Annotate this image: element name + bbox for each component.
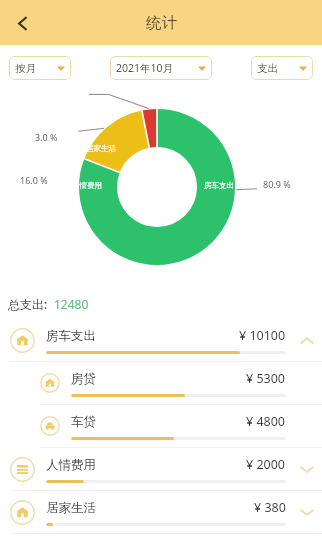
staticText: 按月 [15,62,36,75]
staticText: 统计 [146,13,177,33]
button[interactable]: 2021年10月 [110,56,212,80]
staticText: 12480 [54,296,89,312]
staticText: 16.0 % [20,174,48,186]
staticText: ¥ 4800 [246,413,286,430]
staticText: 房车支出 [204,181,234,190]
staticText: 居家生活 [86,144,116,153]
button[interactable]: 房车支出 [0,319,322,361]
staticText: ¥ 2000 [246,456,286,473]
button[interactable]: 按月 [9,56,71,80]
staticText: 80.9 % [263,178,291,190]
staticText: 支出 [257,62,278,75]
staticText: 车贷 [71,414,96,430]
button[interactable]: Collapse [292,319,322,361]
staticText: 居家生活 [46,500,96,516]
button[interactable]: 居家生活 [0,491,322,533]
button[interactable]: Expand [292,491,322,533]
button[interactable]: 车贷 [0,405,322,447]
staticText: 3.0 % [35,131,58,143]
staticText: 2021年10月 [116,61,174,75]
staticText: 房贷 [71,371,96,387]
button[interactable]: Back [0,1,44,45]
staticText: ¥ 5300 [246,370,286,387]
button[interactable]: 房贷 [0,362,322,404]
button[interactable]: Expand [292,448,322,490]
staticText: ¥ 10100 [239,327,286,344]
staticText: 总支出: [8,296,48,312]
staticText: ¥ 380 [254,499,286,516]
staticText: 人情费用 [72,181,102,190]
staticText: 人情费用 [46,457,96,473]
button[interactable]: 人情费用 [0,448,322,490]
button[interactable]: 支出 [251,56,313,80]
staticText: 房车支出 [46,328,96,344]
